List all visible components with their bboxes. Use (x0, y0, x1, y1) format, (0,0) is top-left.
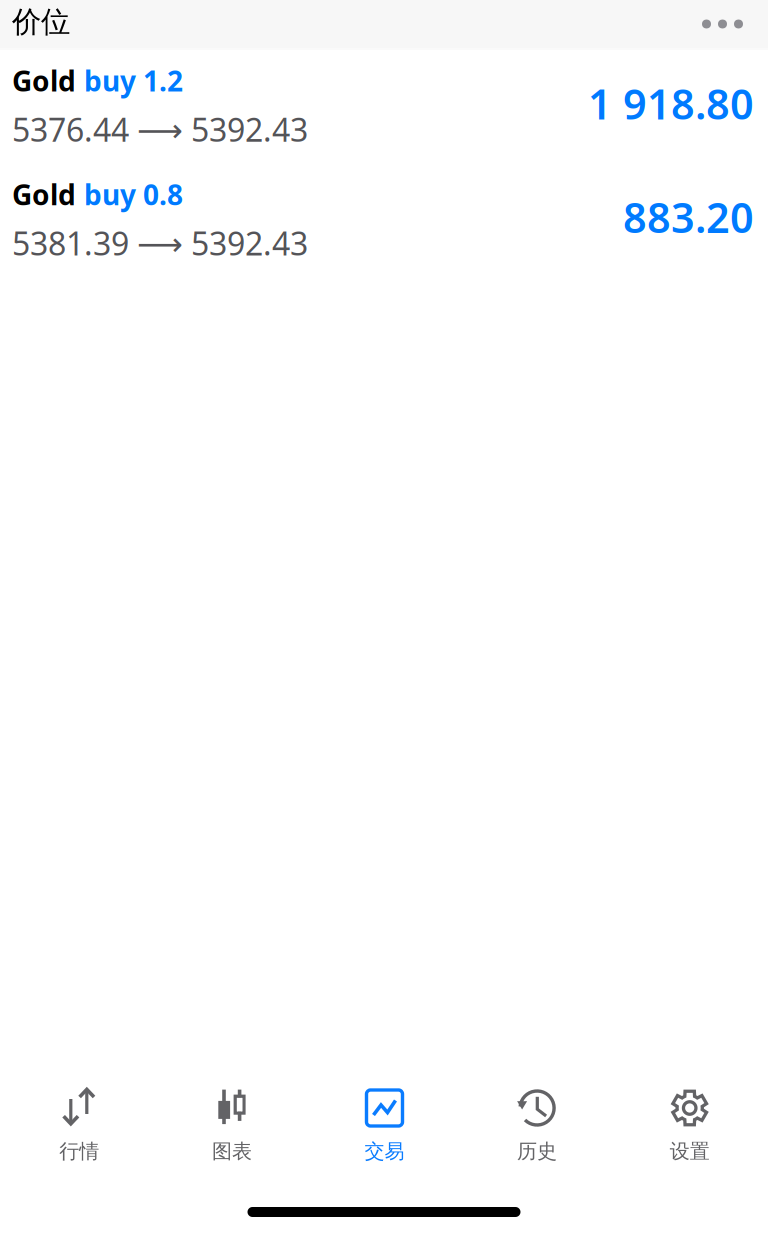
staticText: 883.20 (623, 190, 754, 244)
staticText: 5381.39 ⟶ 5392.43 (12, 222, 308, 264)
staticText: buy 1.2 (84, 62, 183, 99)
button[interactable]: More options (688, 7, 760, 40)
button[interactable]: 历史 (461, 1088, 613, 1164)
staticText: 交易 (364, 1139, 404, 1164)
staticText: 行情 (59, 1139, 99, 1164)
staticText: 1 918.80 (588, 76, 754, 131)
staticText: 图表 (212, 1139, 252, 1164)
button[interactable]: 交易 (308, 1088, 461, 1164)
button[interactable]: 行情 (3, 1088, 156, 1164)
staticText: 5376.44 ⟶ 5392.43 (12, 108, 308, 151)
staticText: Gold (12, 176, 76, 213)
button[interactable]: 图表 (156, 1088, 308, 1164)
staticText: Gold (12, 62, 76, 99)
button[interactable]: Gold (0, 164, 768, 277)
button[interactable]: 设置 (613, 1088, 766, 1164)
staticText: 价位 (12, 4, 70, 40)
staticText: 历史 (517, 1139, 557, 1164)
button[interactable]: Gold (0, 50, 768, 164)
staticText: 设置 (670, 1139, 710, 1164)
staticText: buy 0.8 (84, 176, 183, 213)
